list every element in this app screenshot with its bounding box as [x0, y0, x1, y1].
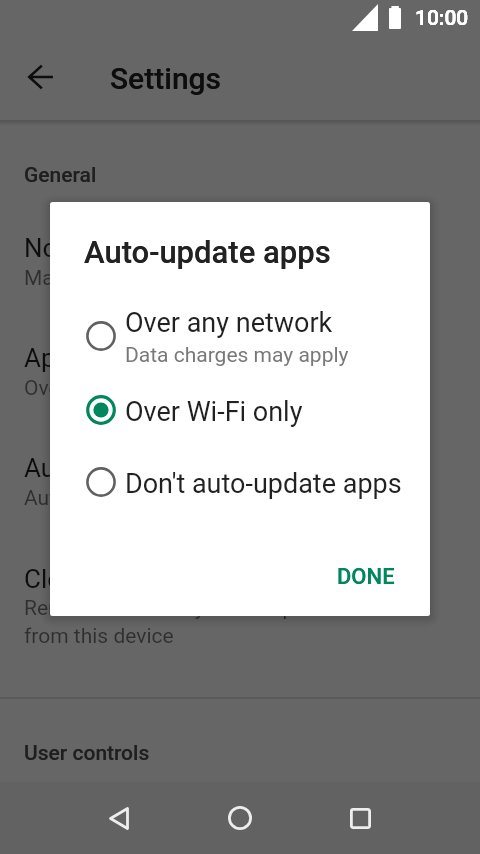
button[interactable]: Navigate up	[12, 35, 70, 119]
staticText: App download preference	[24, 343, 320, 373]
button[interactable]: DONE	[321, 550, 411, 604]
staticText: Settings	[110, 61, 222, 96]
staticText: Over any network	[125, 307, 333, 339]
staticText: Auto-update apps	[84, 234, 331, 270]
staticText: Remove searches you have performed from …	[24, 596, 381, 648]
button[interactable]: Home	[204, 782, 276, 854]
staticText: Over any network	[24, 376, 186, 401]
staticText: Over Wi-Fi only	[125, 396, 303, 428]
staticText: General	[24, 163, 97, 188]
staticText: General	[24, 163, 97, 188]
staticText: 10:00	[415, 6, 469, 31]
staticText: Notifications	[24, 233, 172, 263]
staticText: 10:00	[415, 6, 469, 31]
staticText: Auto-update apps	[24, 453, 229, 483]
button[interactable]: Don't auto-update apps	[50, 453, 430, 511]
staticText: DONE	[337, 564, 395, 590]
staticText: Auto-update apps over Wi-Fi only	[24, 486, 330, 511]
staticText: Data charges may apply	[125, 343, 349, 368]
staticText: Auto-update apps	[84, 234, 331, 270]
button[interactable]: Over any network	[50, 301, 430, 371]
staticText: User controls	[24, 741, 150, 766]
button[interactable]: Recent apps	[324, 782, 396, 854]
staticText: Manage notification settings	[24, 266, 291, 291]
button[interactable]: Clear local search history	[0, 554, 480, 682]
button[interactable]: Notifications	[0, 223, 480, 323]
staticText: DONE	[337, 564, 395, 590]
staticText: Clear local search history	[24, 564, 315, 594]
button[interactable]: Back	[84, 782, 156, 854]
staticText: Settings	[110, 61, 222, 96]
button[interactable]: Over Wi-Fi only	[50, 381, 430, 439]
staticText: Don't auto-update apps	[125, 468, 402, 500]
staticText: User controls	[24, 741, 150, 766]
button[interactable]: Auto-update apps	[0, 443, 480, 543]
button[interactable]: App download preference	[0, 333, 480, 433]
